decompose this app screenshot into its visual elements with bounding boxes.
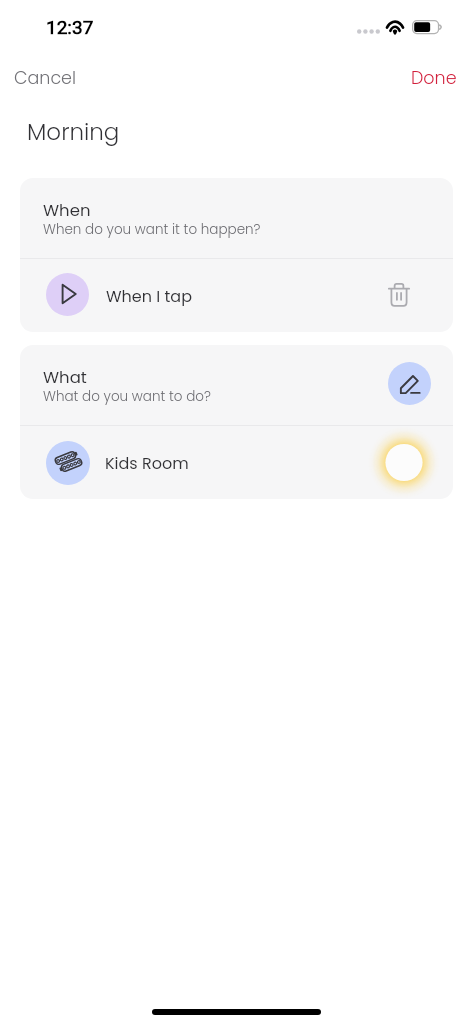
- button[interactable]: Cancel: [0, 57, 91, 100]
- staticText: When do you want it to happen?: [43, 220, 261, 239]
- staticText: Done: [411, 66, 457, 91]
- button[interactable]: Kids Room: [20, 426, 453, 499]
- staticText: When I tap: [106, 285, 192, 307]
- button[interactable]: Delete: [379, 276, 419, 316]
- staticText: Morning: [27, 116, 120, 148]
- staticText: When: [43, 199, 91, 222]
- button[interactable]: When: [20, 178, 453, 258]
- staticText: Kids Room: [105, 452, 189, 474]
- staticText: Cancel: [14, 66, 77, 91]
- button[interactable]: Edit: [388, 362, 431, 405]
- staticText: 12:37: [46, 16, 94, 38]
- staticText: What do you want to do?: [43, 387, 211, 406]
- button[interactable]: Light colour: [364, 426, 444, 499]
- button[interactable]: What: [20, 345, 453, 425]
- button[interactable]: Done: [395, 57, 473, 100]
- button[interactable]: When I tap: [20, 259, 453, 332]
- staticText: What: [43, 366, 87, 389]
